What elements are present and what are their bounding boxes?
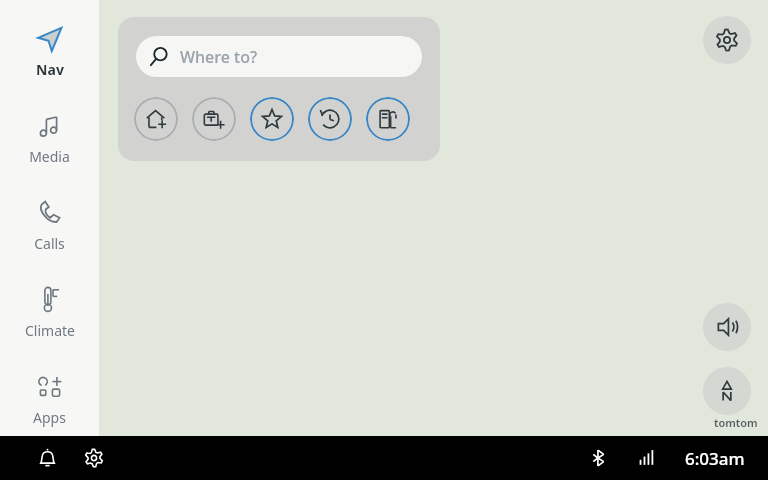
staticText: Apps [33,408,66,427]
button[interactable]: Nav [0,16,99,86]
staticText: Climate [25,321,75,340]
button[interactable]: Settings [703,16,751,64]
button[interactable]: Volume [703,303,751,351]
button[interactable]: Apps [0,364,99,434]
button[interactable]: Media [0,103,99,173]
button[interactable]: Settings [79,443,109,473]
button[interactable]: Add work [192,97,236,141]
staticText: 6:03am [685,447,745,470]
button[interactable]: Fuel [366,97,410,141]
button[interactable]: Recent [308,97,352,141]
button[interactable]: Where to? [136,36,422,77]
button[interactable]: Add home [134,97,178,141]
button[interactable]: Climate [0,277,99,347]
staticText: Nav [36,60,64,79]
button[interactable]: North up [703,367,751,415]
staticText: Calls [34,234,65,253]
button[interactable]: Notifications [32,443,62,473]
staticText: tomtom [714,415,758,430]
staticText: Media [29,147,70,166]
button[interactable]: Calls [0,190,99,260]
staticText: Where to? [180,46,258,68]
button[interactable]: Favourites [250,97,294,141]
